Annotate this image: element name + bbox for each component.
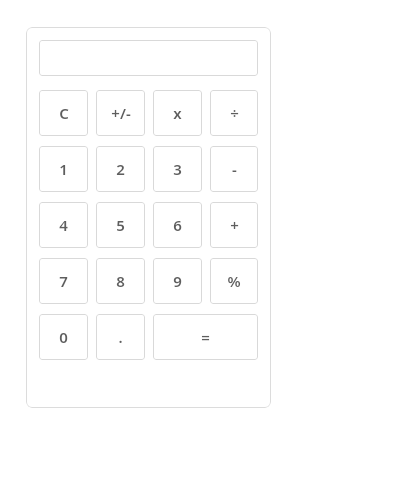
staticText: =: [201, 327, 210, 347]
staticText: ÷: [230, 103, 239, 123]
staticText: 5: [116, 215, 125, 235]
button[interactable]: [39, 40, 258, 76]
button[interactable]: =: [153, 314, 258, 360]
staticText: 6: [173, 215, 182, 235]
staticText: .: [118, 327, 123, 347]
button[interactable]: 4: [39, 202, 88, 248]
staticText: x: [173, 103, 182, 123]
button[interactable]: 1: [39, 146, 88, 192]
staticText: 4: [59, 215, 68, 235]
staticText: -: [232, 159, 237, 179]
staticText: 0: [59, 327, 68, 347]
staticText: 1: [59, 159, 68, 179]
button[interactable]: 3: [153, 146, 202, 192]
button[interactable]: 8: [96, 258, 145, 304]
button[interactable]: %: [210, 258, 258, 304]
button[interactable]: 7: [39, 258, 88, 304]
staticText: 8: [116, 271, 125, 291]
staticText: 2: [116, 159, 125, 179]
button[interactable]: C: [39, 90, 88, 136]
staticText: %: [227, 271, 241, 291]
button[interactable]: 6: [153, 202, 202, 248]
button[interactable]: x: [153, 90, 202, 136]
button[interactable]: +/-: [96, 90, 145, 136]
staticText: 3: [173, 159, 182, 179]
button[interactable]: -: [210, 146, 258, 192]
button[interactable]: 5: [96, 202, 145, 248]
staticText: 7: [59, 271, 68, 291]
button[interactable]: +: [210, 202, 258, 248]
button[interactable]: 0: [39, 314, 88, 360]
staticText: +: [230, 215, 239, 235]
button[interactable]: ÷: [210, 90, 258, 136]
button[interactable]: 9: [153, 258, 202, 304]
staticText: C: [59, 103, 69, 123]
staticText: 9: [173, 271, 182, 291]
staticText: +/-: [111, 103, 131, 123]
button[interactable]: 2: [96, 146, 145, 192]
button[interactable]: .: [96, 314, 145, 360]
